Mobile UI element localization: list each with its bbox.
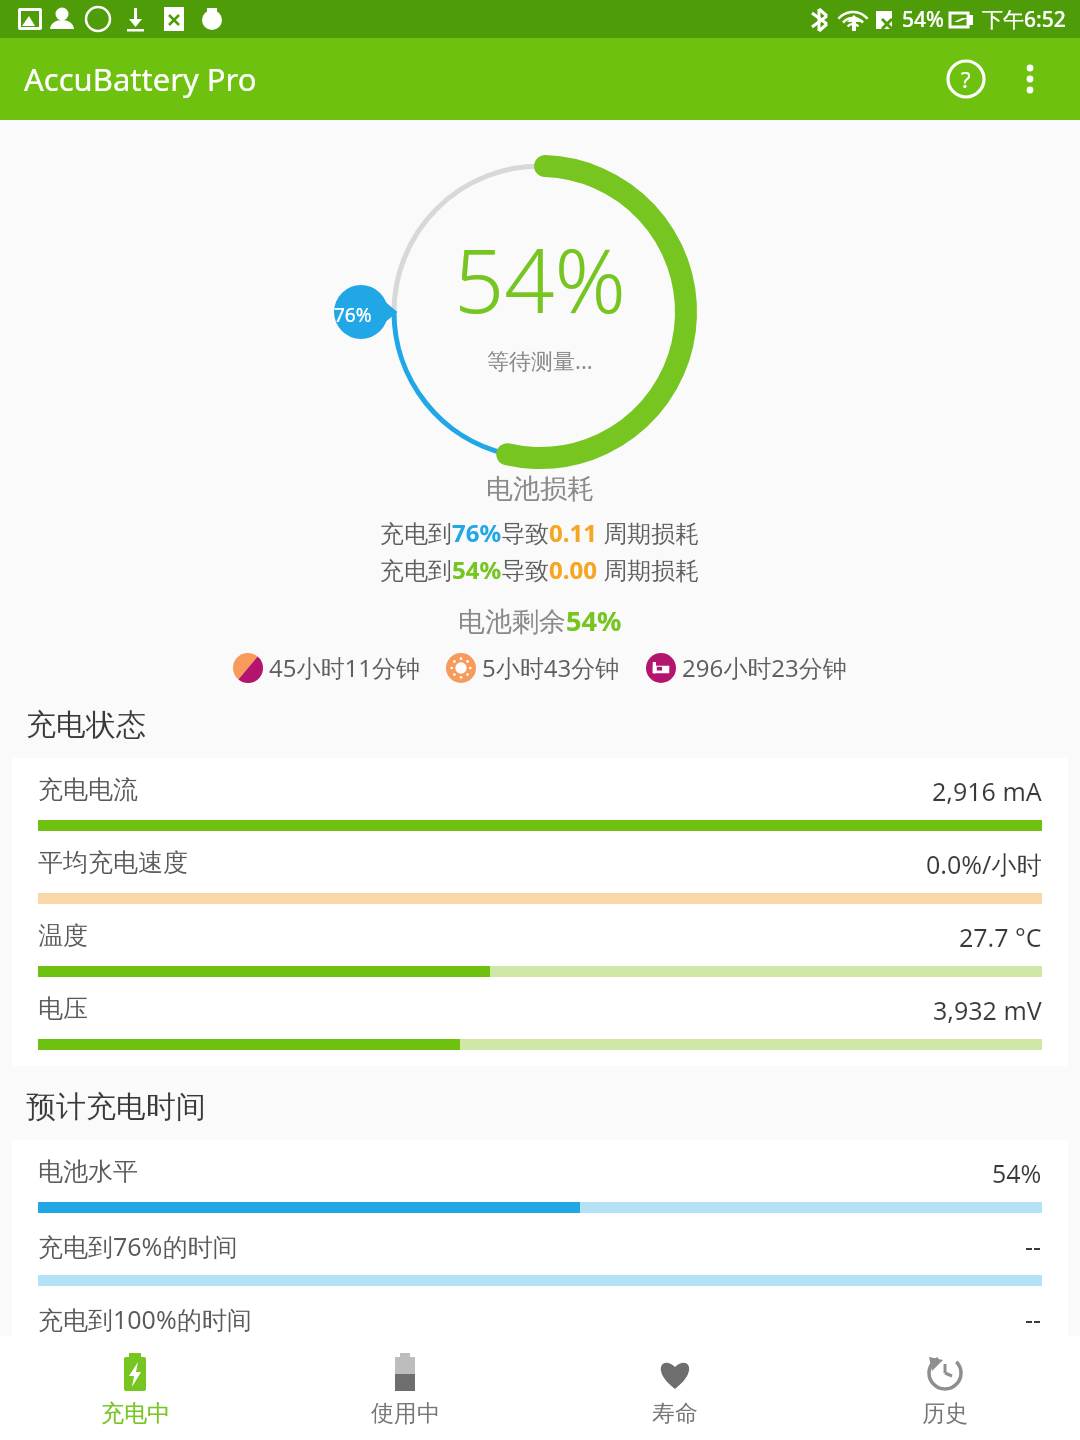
button[interactable]: 充电电流 (12, 758, 1068, 831)
button[interactable]: 电池水平 (12, 1140, 1068, 1213)
staticText: 寿命 (652, 1399, 698, 1428)
button[interactable]: Help (934, 47, 998, 111)
staticText: 0.0%/小时 (926, 847, 1042, 881)
staticText: 296小时23分钟 (682, 651, 847, 684)
staticText: 电池剩余54% (458, 602, 622, 639)
staticText: ? (961, 64, 971, 94)
button[interactable]: More options (998, 47, 1062, 111)
staticText: 电池损耗 (486, 472, 594, 506)
button[interactable]: 温度 (12, 904, 1068, 977)
staticText: 45小时11分钟 (269, 651, 420, 684)
staticText: 温度 (38, 920, 88, 951)
button[interactable]: 平均充电速度 (12, 831, 1068, 904)
staticText: 5小时43分钟 (482, 651, 620, 684)
staticText: 充电中 (101, 1399, 170, 1428)
button[interactable]: 历史 (810, 1336, 1080, 1440)
staticText: -- (1025, 1229, 1042, 1263)
staticText: 2,916 mA (932, 774, 1042, 808)
staticText: 下午6:52 (982, 5, 1066, 34)
staticText: AccuBattery Pro (24, 58, 257, 100)
staticText: -- (1025, 1302, 1042, 1336)
button[interactable]: 寿命 (540, 1336, 810, 1440)
staticText: 54% (454, 219, 626, 339)
staticText: 54% (902, 5, 944, 34)
staticText: 等待测量... (487, 345, 593, 375)
staticText: 充电到100%的时间 (38, 1302, 252, 1336)
staticText: 平均充电速度 (38, 847, 188, 878)
staticText: 充电到76%的时间 (38, 1229, 238, 1263)
staticText: 使用中 (371, 1399, 440, 1428)
button[interactable]: 充电中 (0, 1336, 270, 1440)
staticText: 电池水平 (38, 1156, 138, 1187)
staticText: 27.7 °C (959, 920, 1042, 954)
staticText: 充电到54%导致0.00 周期损耗 (380, 553, 700, 586)
staticText: 历史 (922, 1399, 968, 1428)
staticText: 充电状态 (26, 706, 146, 744)
staticText: 3,932 mV (933, 993, 1042, 1027)
button[interactable]: 电压 (12, 977, 1068, 1066)
staticText: 充电到76%导致0.11 周期损耗 (380, 516, 700, 549)
button[interactable]: 充电到76%的时间 (12, 1213, 1068, 1286)
staticText: 76% (334, 302, 372, 328)
button[interactable]: 使用中 (270, 1336, 540, 1440)
staticText: 电压 (38, 993, 88, 1024)
staticText: 预计充电时间 (26, 1088, 206, 1126)
staticText: 54% (992, 1156, 1042, 1190)
button[interactable]: 充电到100%的时间 (12, 1286, 1068, 1336)
staticText: 充电电流 (38, 774, 138, 805)
